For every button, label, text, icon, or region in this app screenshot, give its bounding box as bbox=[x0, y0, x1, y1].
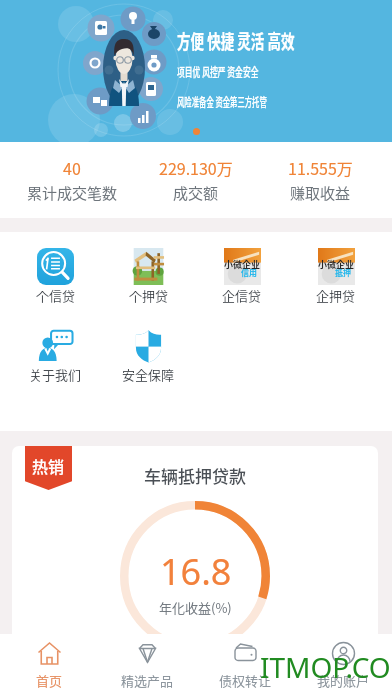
button[interactable]: 精选产品 bbox=[98, 634, 196, 696]
staticText: 我的账户 bbox=[317, 671, 370, 690]
button[interactable]: 个押贷 bbox=[102, 248, 195, 305]
button[interactable]: 个信贷 bbox=[9, 248, 102, 305]
staticText: 16.8 bbox=[160, 547, 232, 596]
staticText: 债权转让 bbox=[219, 671, 272, 690]
staticText: 关于我们 bbox=[29, 365, 82, 384]
button[interactable]: 首页 bbox=[0, 634, 98, 696]
staticText: 首页 bbox=[36, 671, 63, 690]
staticText: 风险准备金 资金第三方托管 bbox=[177, 93, 267, 111]
button[interactable]: 我的账户 bbox=[294, 634, 392, 696]
staticText: 个信贷 bbox=[36, 286, 76, 305]
staticText: 小微企业 bbox=[318, 258, 355, 271]
button[interactable]: 关于我们 bbox=[9, 327, 102, 384]
button[interactable]: 小微企业 bbox=[289, 248, 383, 305]
staticText: 年化收益(%) bbox=[159, 598, 232, 617]
staticText: 抵押 bbox=[335, 267, 351, 279]
staticText: 信用 bbox=[241, 267, 257, 279]
staticText: 企信贷 bbox=[222, 286, 262, 305]
staticText: 个押贷 bbox=[129, 286, 169, 305]
button[interactable]: 热销 bbox=[12, 446, 378, 650]
staticText: 11.555万 bbox=[288, 156, 353, 179]
staticText: 小微企业 bbox=[224, 258, 261, 271]
staticText: 企押贷 bbox=[316, 286, 356, 305]
staticText: 精选产品 bbox=[121, 671, 174, 690]
staticText: 安全保障 bbox=[122, 365, 175, 384]
button[interactable]: 债权转让 bbox=[196, 634, 294, 696]
staticText: ITMOP.COM bbox=[260, 648, 392, 686]
staticText: 方便 快捷 灵活 高效 bbox=[177, 27, 295, 55]
staticText: 热销 bbox=[32, 454, 65, 477]
staticText: 成交额 bbox=[173, 182, 219, 204]
button[interactable]: 小微企业 bbox=[195, 248, 289, 305]
staticText: 项目优 风控严 资金安全 bbox=[177, 63, 259, 81]
staticText: 40 bbox=[63, 156, 81, 179]
staticText: 赚取收益 bbox=[290, 182, 351, 204]
staticText: 229.130万 bbox=[159, 156, 233, 179]
button[interactable]: 安全保障 bbox=[102, 327, 195, 384]
staticText: 车辆抵押贷款 bbox=[144, 463, 246, 488]
staticText: 累计成交笔数 bbox=[27, 182, 118, 204]
